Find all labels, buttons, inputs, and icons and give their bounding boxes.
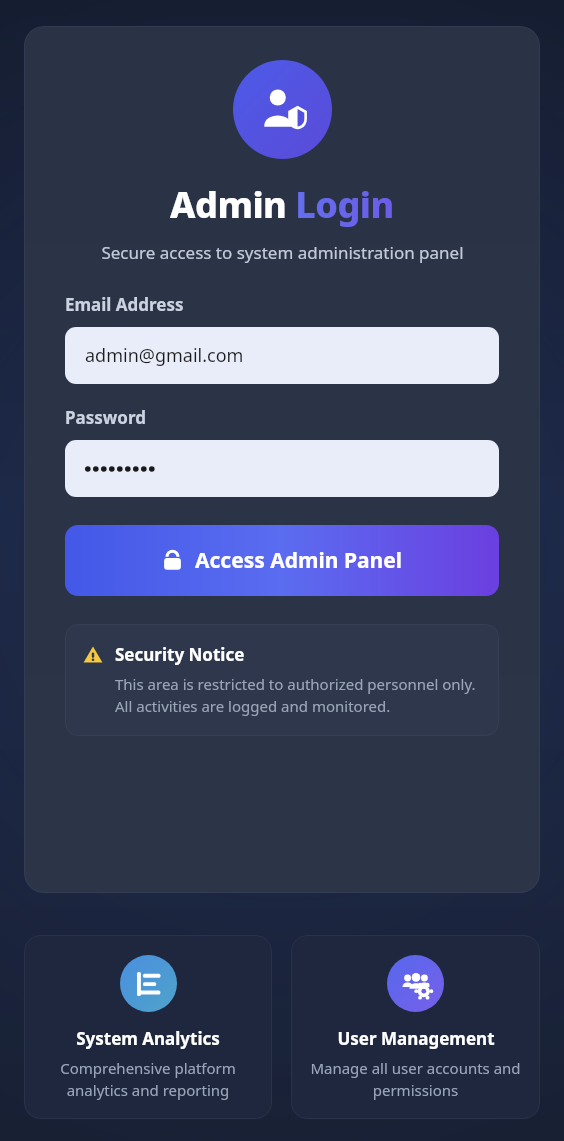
staticText: Password	[65, 406, 146, 429]
staticText: Secure access to system administration p…	[101, 241, 464, 264]
other: Admin	[257, 84, 309, 136]
staticText: admin@gmail.com	[85, 343, 244, 368]
staticText: System Analytics	[76, 1027, 220, 1050]
staticText: Access Admin Panel	[195, 546, 403, 575]
staticText: Manage all user accounts and permissions	[301, 1058, 530, 1101]
other: System Analytics	[134, 969, 164, 999]
other: Warning	[83, 645, 103, 665]
staticText: Security Notice	[115, 643, 245, 666]
other: Lock	[162, 550, 183, 571]
staticText: User Management	[337, 1027, 495, 1050]
staticText: Admin Login	[170, 180, 394, 229]
button[interactable]: Lock	[65, 525, 499, 596]
button[interactable]: admin@gmail.com	[65, 327, 499, 384]
staticText: This area is restricted to authorized pe…	[115, 674, 481, 717]
button[interactable]	[65, 440, 499, 497]
staticText: Email Address	[65, 293, 184, 316]
button[interactable]: User Management	[291, 935, 540, 1119]
button[interactable]: System Analytics	[24, 935, 272, 1119]
other: User Management	[401, 969, 431, 999]
staticText: Comprehensive platform analytics and rep…	[34, 1058, 262, 1101]
